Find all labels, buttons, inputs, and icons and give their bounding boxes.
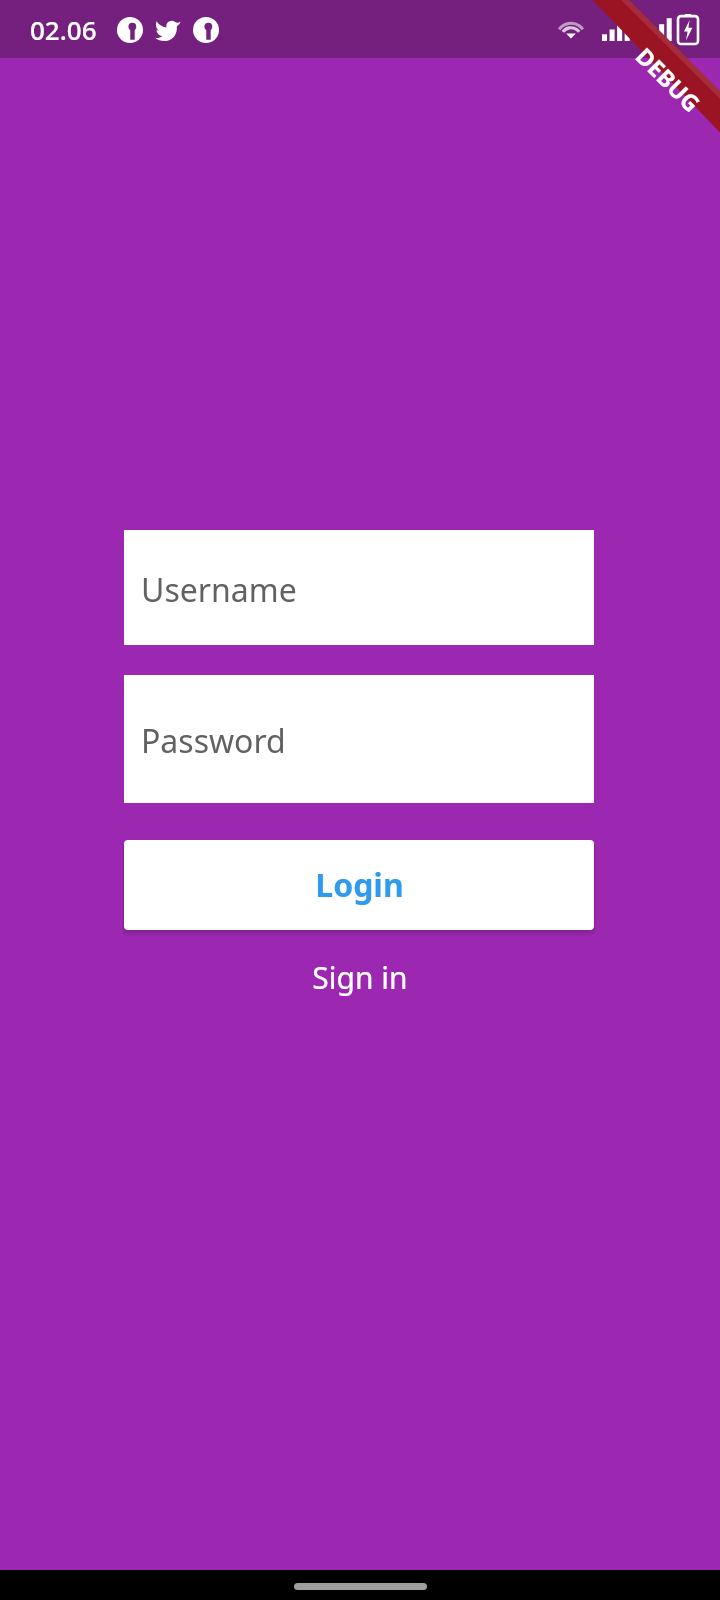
button[interactable]: Username bbox=[124, 530, 594, 645]
staticText: Password bbox=[141, 719, 286, 763]
button[interactable]: Login bbox=[124, 840, 594, 930]
other: Home gesture bar bbox=[294, 1583, 427, 1590]
button[interactable]: Password bbox=[124, 675, 594, 803]
staticText: Login bbox=[315, 863, 404, 907]
staticText: Sign in bbox=[312, 957, 408, 998]
button[interactable]: Sign in bbox=[0, 955, 720, 999]
staticText: 02.06 bbox=[30, 12, 97, 47]
staticText: Username bbox=[141, 568, 297, 612]
staticText: DEBUG bbox=[630, 40, 708, 119]
